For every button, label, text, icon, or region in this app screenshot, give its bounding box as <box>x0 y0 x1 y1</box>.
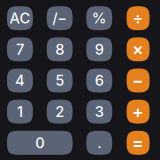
button[interactable]: AC <box>7 6 33 30</box>
staticText: 7 <box>16 40 24 58</box>
staticText: × <box>132 39 144 60</box>
button[interactable]: − <box>127 68 150 92</box>
staticText: + <box>132 101 144 122</box>
button[interactable]: 5 <box>47 68 73 92</box>
button[interactable]: 4 <box>7 68 33 92</box>
staticText: − <box>132 70 144 91</box>
button[interactable]: × <box>127 37 150 61</box>
staticText: . <box>97 134 101 152</box>
staticText: 0 <box>35 134 44 152</box>
staticText: /− <box>52 9 67 27</box>
button[interactable]: = <box>127 131 150 155</box>
staticText: AC <box>9 9 30 27</box>
button[interactable]: /− <box>47 6 73 30</box>
staticText: 5 <box>55 72 64 89</box>
button[interactable]: + <box>127 100 150 124</box>
staticText: 8 <box>55 40 64 58</box>
button[interactable]: 0 <box>7 131 73 155</box>
button[interactable]: 3 <box>86 100 112 124</box>
button[interactable]: . <box>86 131 112 155</box>
staticText: 3 <box>95 103 104 120</box>
button[interactable]: 8 <box>47 37 73 61</box>
staticText: 2 <box>55 103 64 120</box>
staticText: 9 <box>95 40 104 58</box>
staticText: 6 <box>95 72 104 89</box>
button[interactable]: 6 <box>86 68 112 92</box>
staticText: = <box>132 132 144 153</box>
staticText: 1 <box>17 103 23 120</box>
button[interactable]: 9 <box>86 37 112 61</box>
button[interactable]: 1 <box>7 100 33 124</box>
staticText: 4 <box>15 72 25 89</box>
staticText: % <box>92 9 107 27</box>
button[interactable]: 7 <box>7 37 33 61</box>
button[interactable]: % <box>86 6 112 30</box>
button[interactable]: ÷ <box>127 6 150 30</box>
button[interactable]: 2 <box>47 100 73 124</box>
staticText: ÷ <box>133 8 144 28</box>
